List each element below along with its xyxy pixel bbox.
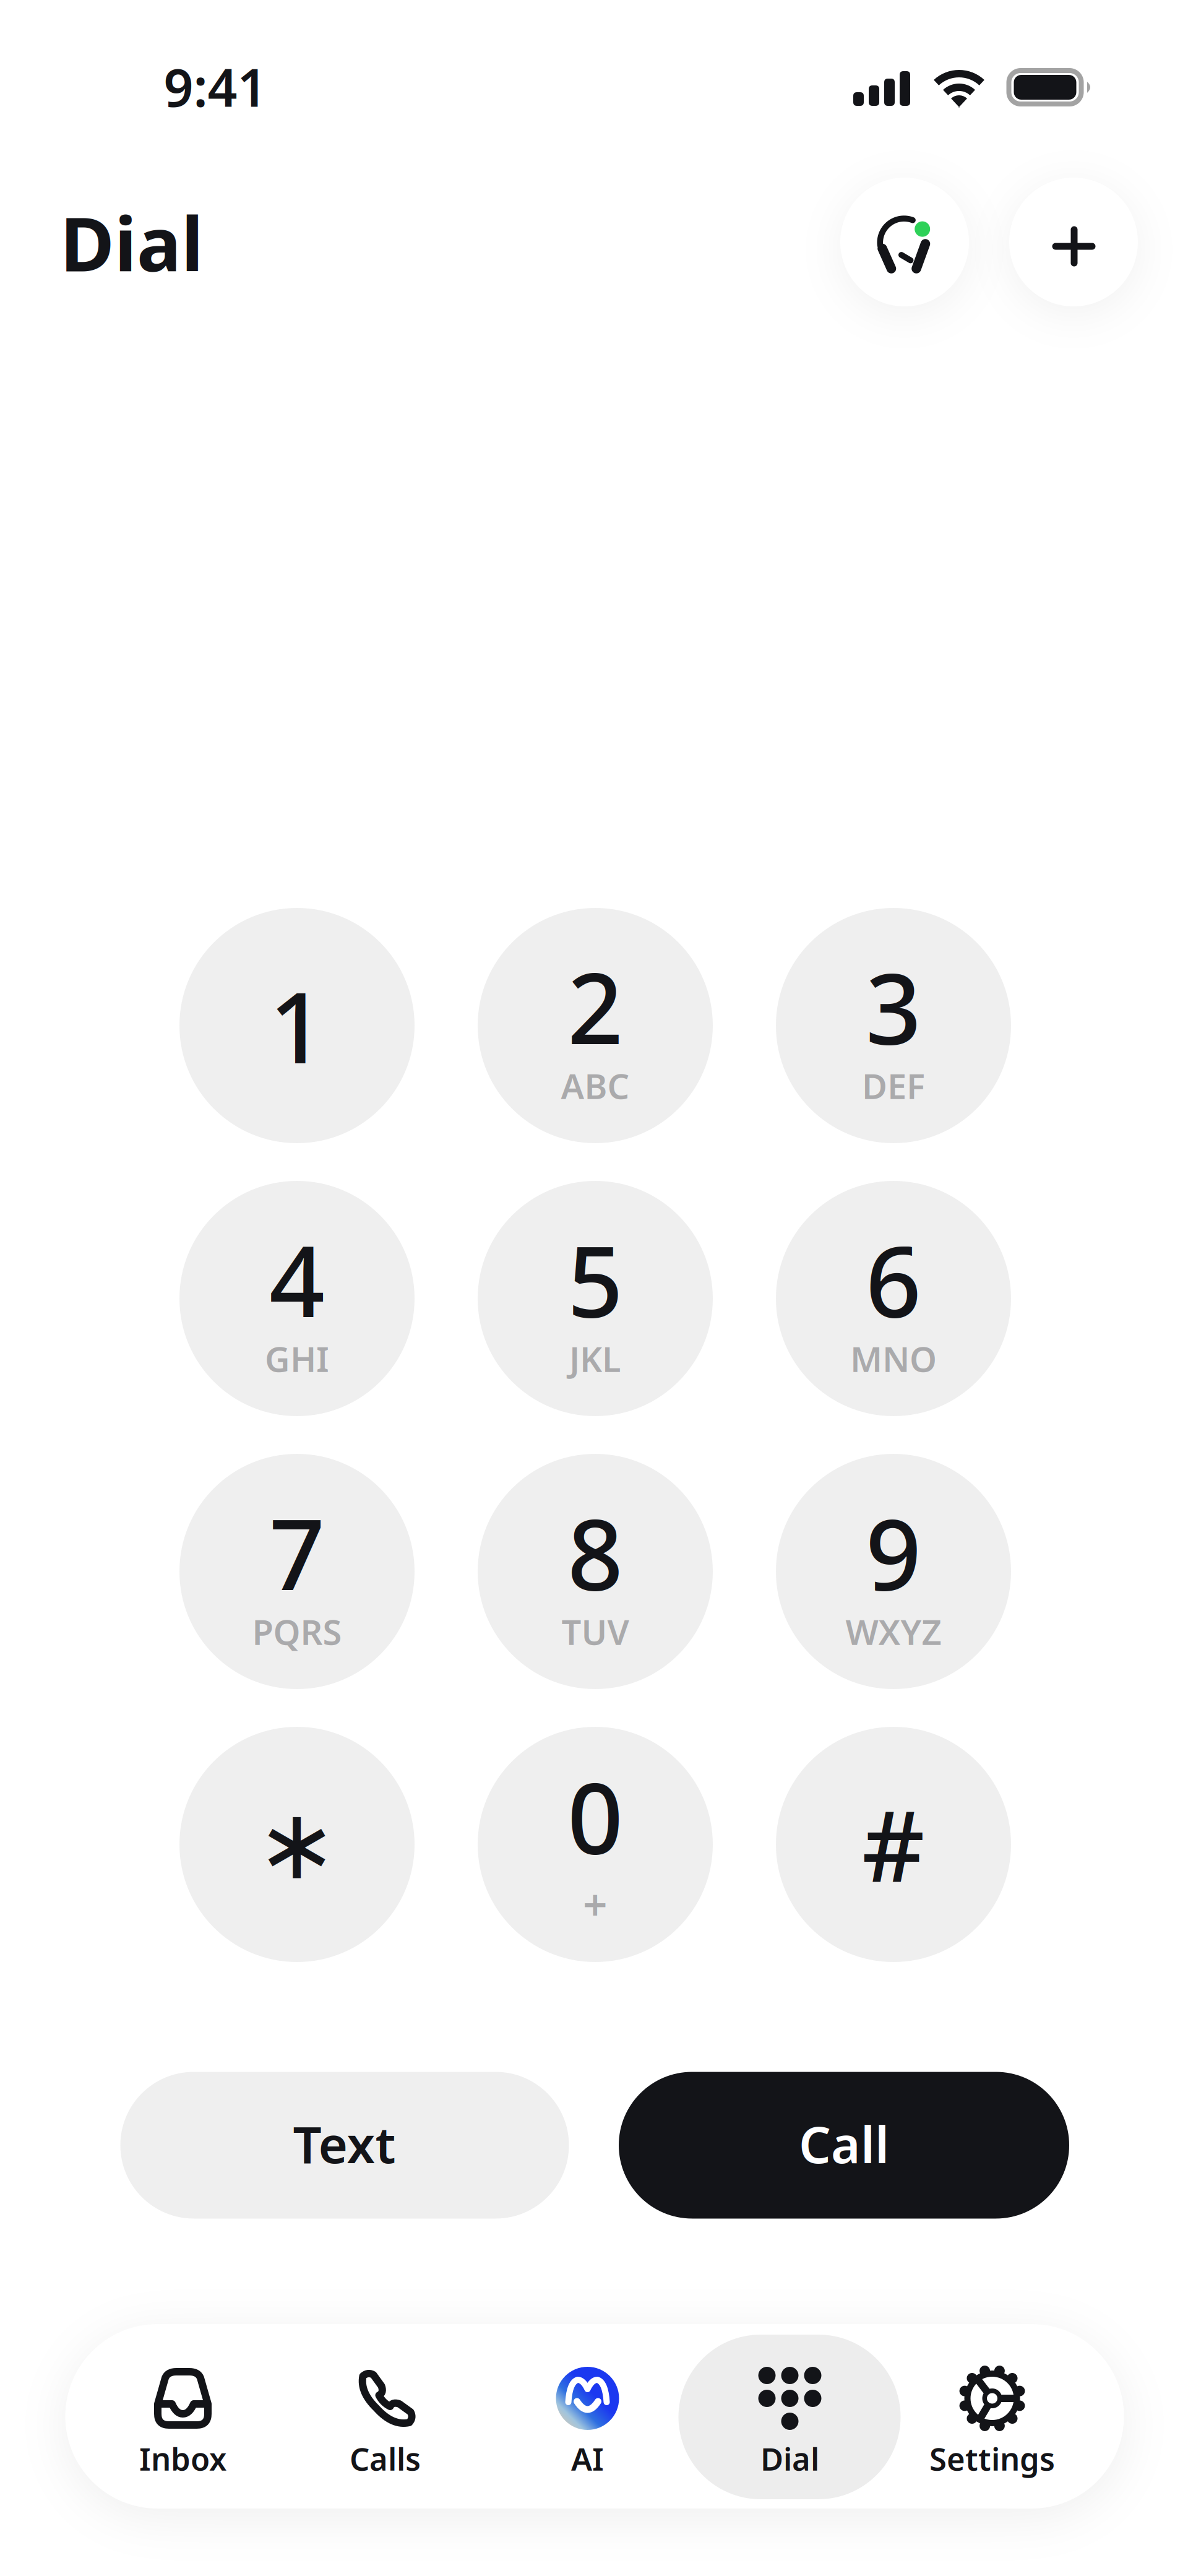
staticText: Dial <box>60 193 204 292</box>
button[interactable]: 3 <box>776 908 1011 1143</box>
button[interactable]: AI <box>486 2335 688 2499</box>
staticText: ABC <box>561 1063 630 1109</box>
staticText: 4 <box>269 1215 325 1344</box>
button[interactable]: New contact <box>1009 178 1138 306</box>
staticText: 9 <box>866 1488 921 1617</box>
button[interactable]: 4 <box>179 1181 415 1416</box>
button[interactable]: 1 <box>179 908 415 1143</box>
staticText: 9:41 <box>164 52 267 121</box>
button[interactable]: 6 <box>776 1181 1011 1416</box>
staticText: Calls <box>350 2438 421 2479</box>
staticText: 3 <box>866 942 921 1071</box>
staticText: DEF <box>862 1063 925 1109</box>
button[interactable]: Settings <box>891 2335 1093 2499</box>
button[interactable]: ∗ <box>179 1727 415 1962</box>
staticText: 6 <box>866 1215 921 1344</box>
staticText: 0 <box>567 1751 623 1881</box>
staticText: Dial <box>760 2438 819 2479</box>
staticText: # <box>862 1780 925 1909</box>
staticText: 2 <box>567 942 623 1071</box>
button[interactable]: Call <box>619 2072 1069 2219</box>
button[interactable]: 7 <box>179 1454 415 1689</box>
staticText: JKL <box>569 1336 621 1382</box>
staticText: WXYZ <box>846 1608 941 1655</box>
button[interactable]: Calls <box>284 2335 486 2499</box>
staticText: 1 <box>269 961 325 1090</box>
button[interactable]: 5 <box>478 1181 713 1416</box>
button[interactable]: # <box>776 1727 1011 1962</box>
button[interactable]: 2 <box>478 908 713 1143</box>
button[interactable]: 9 <box>776 1454 1011 1689</box>
staticText: MNO <box>850 1336 937 1382</box>
staticText: Settings <box>929 2438 1055 2479</box>
button[interactable]: Headset audio <box>840 178 969 306</box>
staticText: AI <box>571 2438 604 2479</box>
button[interactable]: 0 <box>478 1727 713 1962</box>
button[interactable]: Dial <box>688 2335 891 2499</box>
staticText: 5 <box>567 1215 623 1344</box>
button[interactable]: Inbox <box>81 2335 284 2499</box>
staticText: GHI <box>265 1336 329 1382</box>
staticText: 7 <box>269 1488 325 1617</box>
button[interactable]: 8 <box>478 1454 713 1689</box>
staticText: Call <box>799 2110 889 2177</box>
staticText: TUV <box>562 1608 629 1655</box>
staticText: ∗ <box>256 1789 338 1900</box>
button[interactable]: Text <box>120 2072 569 2219</box>
staticText: Inbox <box>139 2438 226 2479</box>
staticText: Text <box>293 2110 396 2177</box>
staticText: 8 <box>567 1488 623 1617</box>
staticText: + <box>583 1875 608 1932</box>
staticText: PQRS <box>252 1608 342 1655</box>
